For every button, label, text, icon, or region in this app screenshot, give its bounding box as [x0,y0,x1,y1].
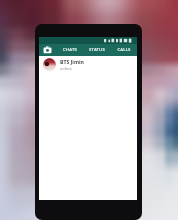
staticText: online [60,66,72,71]
button[interactable]: BTS Jimin [39,56,137,72]
button[interactable]: CHATS [57,47,83,53]
staticText: CALLS [117,47,131,53]
staticText: BTS Jimin [60,58,84,65]
button[interactable]: STATUS [83,47,110,53]
staticText: CHATS [63,47,77,53]
staticText: STATUS [89,47,105,53]
button[interactable]: Camera [43,45,52,55]
button[interactable]: CALLS [110,47,137,53]
